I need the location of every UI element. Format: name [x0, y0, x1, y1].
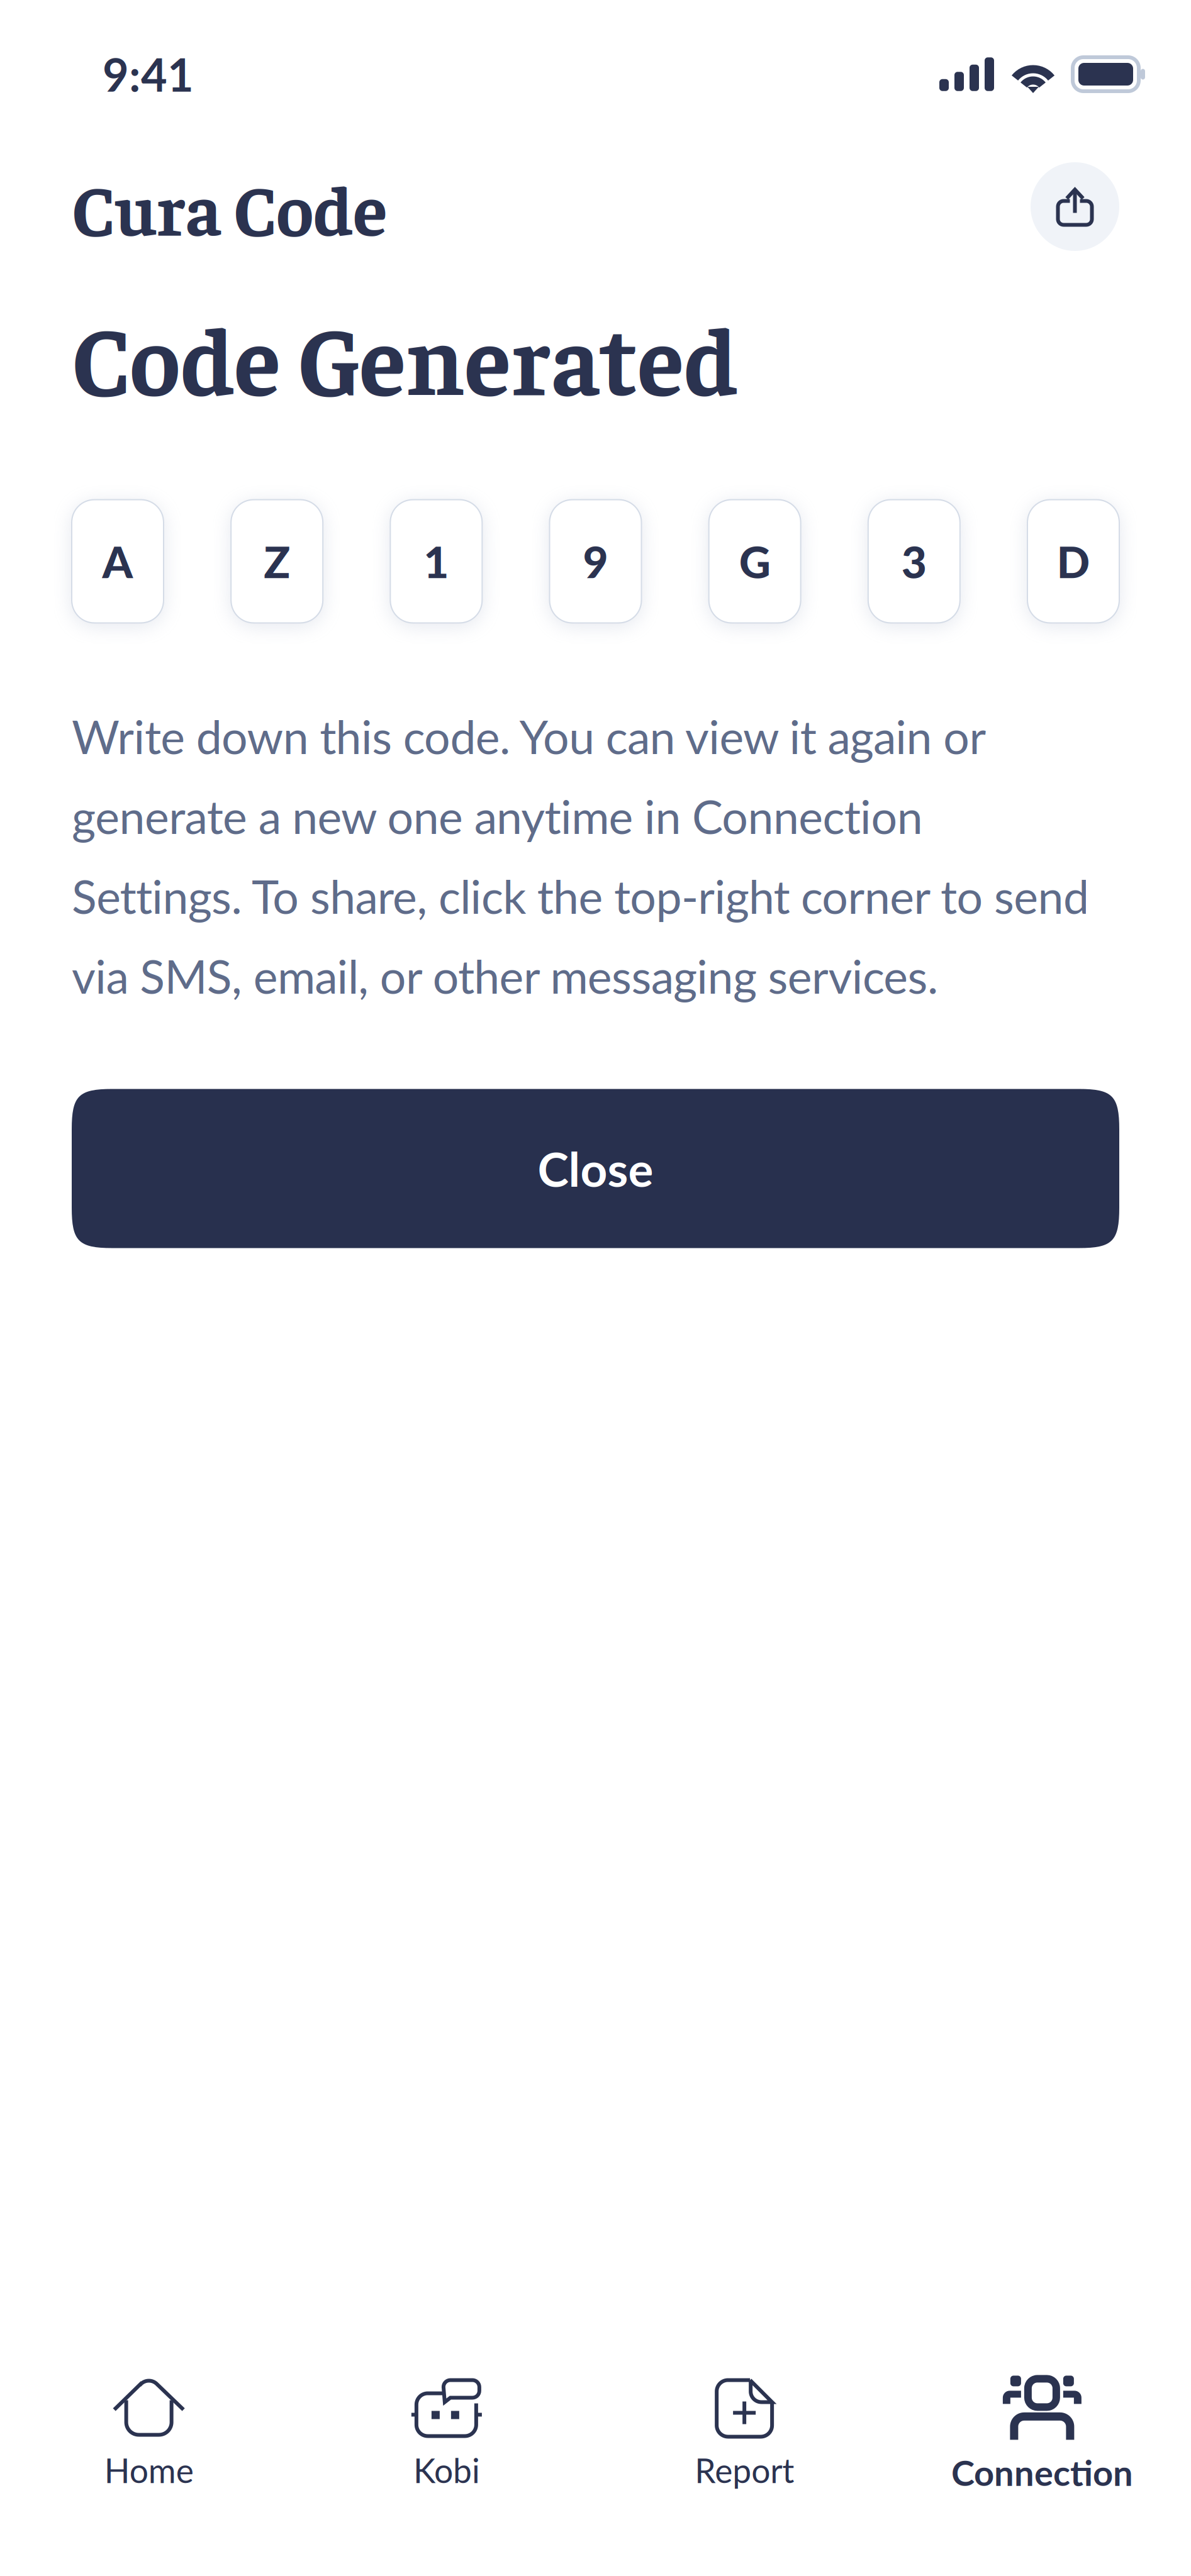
- staticText: Connection: [951, 2451, 1133, 2493]
- staticText: 9:41: [103, 47, 194, 101]
- staticText: 9: [583, 535, 608, 587]
- button[interactable]: Home: [0, 2378, 298, 2490]
- staticText: G: [739, 535, 771, 587]
- staticText: Code Generated: [72, 296, 737, 416]
- staticText: A: [102, 535, 133, 587]
- staticText: Kobi: [413, 2450, 480, 2490]
- staticText: 1: [424, 535, 449, 587]
- staticText: D: [1057, 535, 1090, 587]
- staticText: 3: [901, 535, 927, 587]
- staticText: Close: [538, 1140, 653, 1197]
- button[interactable]: Share: [1031, 162, 1119, 251]
- button[interactable]: Report: [595, 2378, 893, 2490]
- button[interactable]: Kobi: [298, 2378, 595, 2490]
- staticText: Report: [695, 2450, 794, 2490]
- staticText: Z: [264, 535, 290, 587]
- staticText: Home: [104, 2450, 194, 2490]
- staticText: Write down this code. You can view it ag…: [72, 708, 1104, 1003]
- button[interactable]: Connection: [893, 2375, 1191, 2493]
- button[interactable]: Close: [72, 1089, 1119, 1248]
- staticText: Cura Code: [72, 162, 388, 251]
